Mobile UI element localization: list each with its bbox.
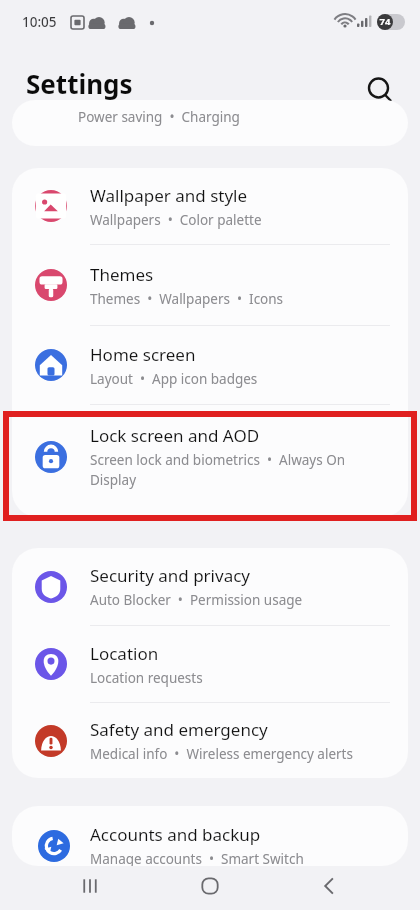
staticText: Screen lock and biometrics • Always On D… (90, 451, 386, 489)
button[interactable]: Search (358, 68, 402, 112)
button[interactable]: Wallpaper and style (12, 168, 408, 244)
button[interactable]: Security and privacy (12, 548, 408, 625)
staticText: Safety and emergency (90, 718, 268, 741)
staticText: Manage accounts • Smart Switch (90, 850, 304, 866)
button[interactable]: Back (300, 862, 360, 910)
staticText: Security and privacy (90, 564, 251, 587)
staticText: Themes • Wallpapers • Icons (90, 290, 284, 308)
button[interactable]: Location (12, 626, 408, 702)
staticText: Medical info • Wireless emergency alerts (90, 745, 353, 763)
button[interactable]: Safety and emergency (12, 703, 408, 778)
staticText: Wallpaper and style (90, 184, 248, 207)
button[interactable]: Home screen (12, 326, 408, 404)
staticText: Settings (26, 66, 133, 101)
button[interactable]: Home (180, 862, 240, 910)
staticText: Layout • App icon badges (90, 370, 258, 388)
staticText: Auto Blocker • Permission usage (90, 591, 303, 609)
staticText: 10:05 (22, 13, 57, 31)
staticText: 74 (377, 15, 393, 28)
staticText: Accounts and backup (90, 823, 261, 846)
button[interactable]: Recents (60, 862, 120, 910)
staticText: Location requests (90, 669, 203, 687)
button[interactable]: Accounts and backup (12, 806, 408, 866)
staticText: Power saving • Charging (78, 108, 240, 126)
button[interactable]: Themes (12, 245, 408, 325)
staticText: Themes (90, 263, 154, 286)
staticText: Wallpapers • Color palette (90, 211, 262, 229)
staticText: Home screen (90, 343, 196, 366)
button[interactable]: Lock screen and AOD (12, 405, 408, 508)
staticText: Location (90, 642, 159, 665)
button[interactable]: Power saving • Charging (12, 100, 408, 146)
staticText: Lock screen and AOD (90, 424, 260, 447)
